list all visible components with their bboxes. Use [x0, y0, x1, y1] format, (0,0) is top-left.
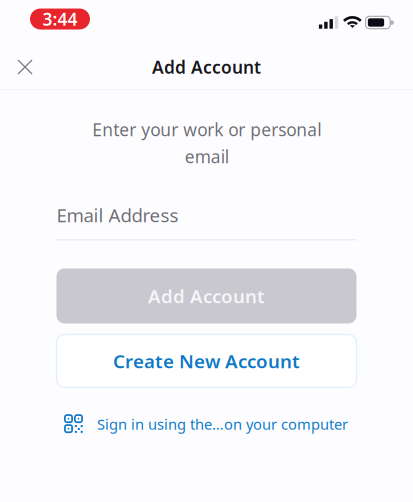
staticText: Email Address	[56, 203, 178, 227]
button[interactable]: Create New Account	[56, 334, 356, 387]
staticText: 3:44	[42, 7, 77, 30]
staticText: Sign in using the…on your computer	[97, 414, 348, 434]
staticText: Add Account	[152, 55, 261, 78]
staticText: Enter your work or personal email	[92, 118, 321, 168]
button[interactable]: Sign in using the…on your computer	[65, 414, 348, 434]
button[interactable]: Add Account	[56, 268, 356, 323]
button[interactable]: Close	[3, 45, 47, 89]
staticText: Create New Account	[113, 348, 300, 373]
staticText: Add Account	[148, 283, 265, 308]
